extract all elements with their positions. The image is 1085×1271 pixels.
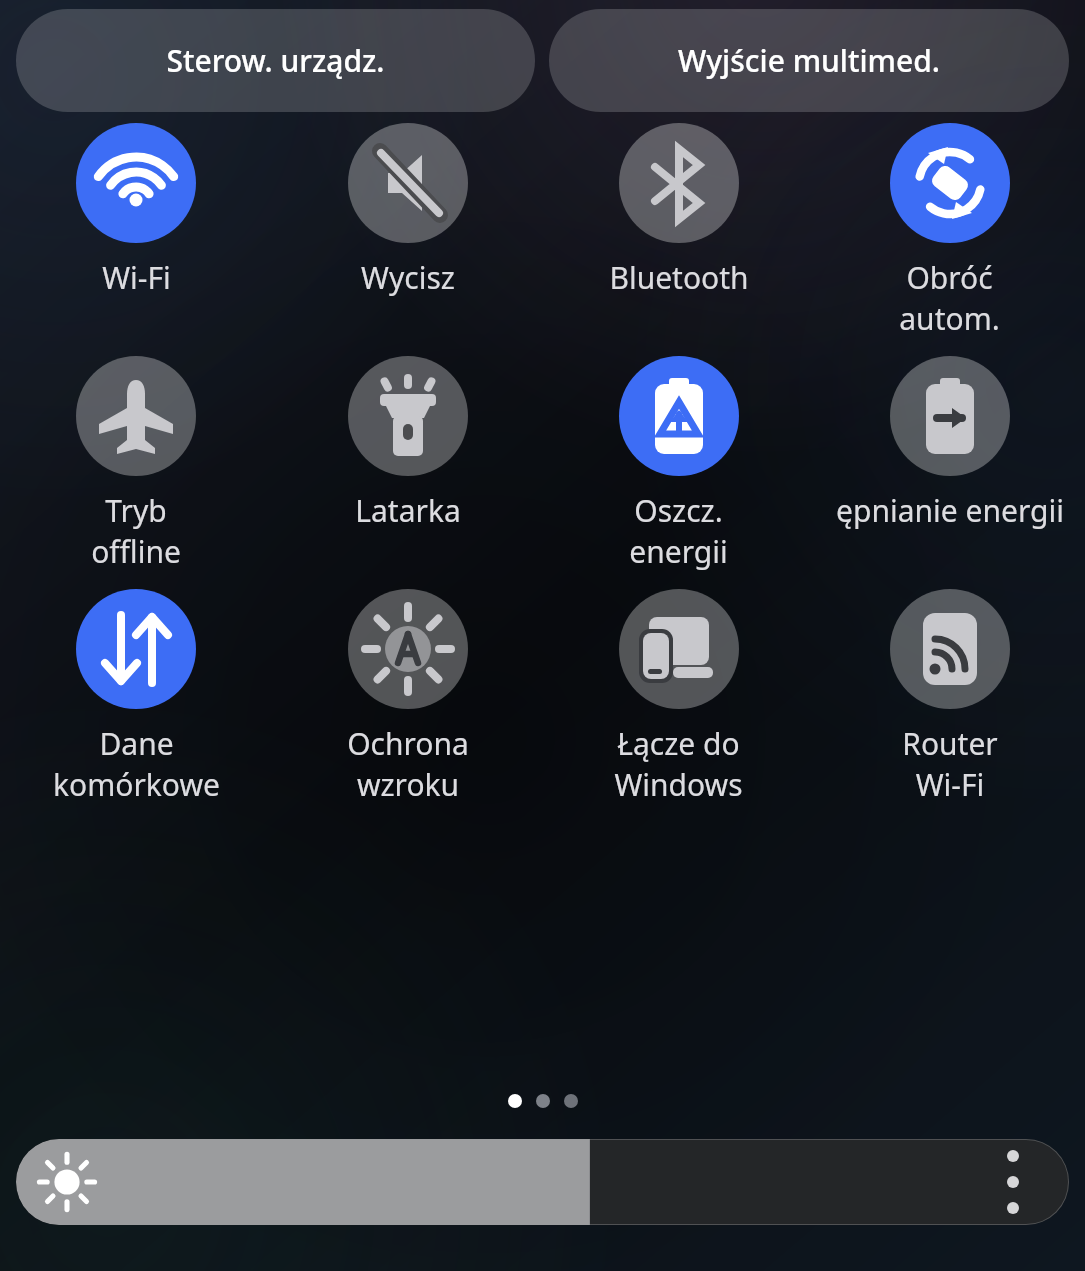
staticText: Router Wi-Fi	[902, 723, 998, 805]
other: Latarka	[348, 356, 468, 476]
staticText: Latarka	[355, 490, 461, 531]
other: Tryb offline	[76, 356, 196, 476]
staticText: Obróć autom.	[899, 257, 1000, 339]
staticText: Tryb offline	[91, 490, 181, 572]
button[interactable]: Tryb offline	[0, 356, 272, 572]
staticText: Ochrona wzroku	[347, 723, 469, 805]
other: Obróć autom.	[890, 123, 1010, 243]
button[interactable]: Router Wi-Fi	[814, 589, 1085, 805]
button[interactable]: Wi-Fi	[0, 123, 272, 298]
button[interactable]: Obróć autom.	[814, 123, 1085, 339]
button[interactable]: Ochrona wzroku	[272, 589, 543, 805]
button[interactable]	[16, 1139, 1069, 1225]
other: Oszcz. energii	[619, 356, 739, 476]
staticText: Wycisz	[361, 257, 455, 298]
button[interactable]: Oszcz. energii	[543, 356, 814, 572]
button[interactable]: Dane komórkowe	[0, 589, 272, 805]
button[interactable]: ępnianie energii	[814, 356, 1085, 531]
staticText: ępnianie energii	[836, 490, 1064, 531]
button[interactable]: Bluetooth	[543, 123, 814, 298]
other: ępnianie energii	[890, 356, 1010, 476]
staticText: Wi-Fi	[102, 257, 171, 298]
other: Wycisz	[348, 123, 468, 243]
other: Bluetooth	[619, 123, 739, 243]
button[interactable]: Łącze do Windows	[543, 589, 814, 805]
staticText: Dane komórkowe	[53, 723, 220, 805]
other: Ochrona wzroku	[348, 589, 468, 709]
other: Wi-Fi	[76, 123, 196, 243]
staticText: Bluetooth	[609, 257, 749, 298]
staticText: Sterow. urządz.	[166, 40, 385, 81]
staticText: Łącze do Windows	[614, 723, 743, 805]
button[interactable]: Wycisz	[272, 123, 543, 298]
other: Łącze do Windows	[619, 589, 739, 709]
other: Dane komórkowe	[76, 589, 196, 709]
button[interactable]: Latarka	[272, 356, 543, 531]
staticText: Wyjście multimed.	[678, 40, 940, 81]
staticText: Oszcz. energii	[629, 490, 728, 572]
button[interactable]: Wyjście multimed.	[549, 9, 1069, 112]
other: Router Wi-Fi	[890, 589, 1010, 709]
button[interactable]: Sterow. urządz.	[16, 9, 535, 112]
